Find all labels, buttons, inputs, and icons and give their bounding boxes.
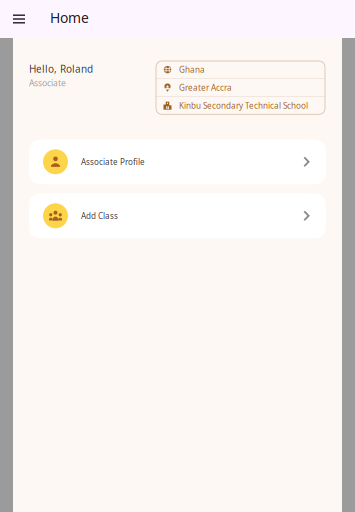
button[interactable]: Add Class <box>29 193 326 238</box>
staticText: Home <box>50 8 89 27</box>
staticText: Ghana <box>179 64 205 75</box>
staticText: Hello, Roland <box>29 62 93 76</box>
staticText: Associate <box>29 77 66 89</box>
staticText: Greater Accra <box>179 82 232 93</box>
staticText: Kinbu Secondary Technical School <box>179 100 308 111</box>
staticText: Add Class <box>81 210 118 221</box>
staticText: Associate Profile <box>81 156 145 167</box>
button[interactable]: Associate Profile <box>29 139 326 184</box>
button[interactable]: Menu <box>6 6 32 31</box>
